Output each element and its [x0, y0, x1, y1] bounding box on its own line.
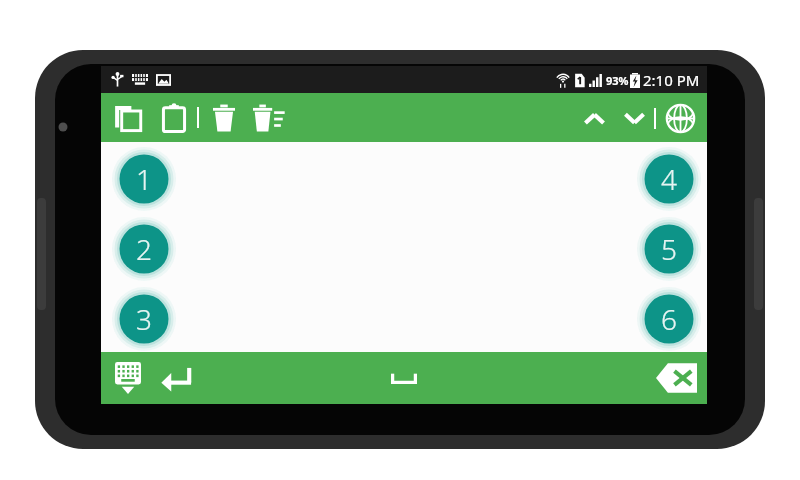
staticText: 2:10 PM [643, 70, 700, 90]
button[interactable]: Previous [576, 100, 612, 136]
button[interactable]: 6 [637, 287, 701, 351]
staticText: 4 [661, 160, 677, 198]
button[interactable]: Hide keyboard [108, 358, 148, 398]
button[interactable]: Backspace [653, 360, 699, 396]
staticText: 93% [606, 73, 629, 88]
button[interactable]: 1 [112, 147, 176, 211]
staticText: 6 [661, 300, 677, 338]
button[interactable]: Language [660, 98, 700, 138]
button[interactable]: 2 [112, 217, 176, 281]
button[interactable]: 3 [112, 287, 176, 351]
button[interactable]: Paste [155, 99, 193, 137]
button[interactable]: Enter [154, 356, 198, 400]
staticText: 5 [661, 230, 677, 268]
button[interactable]: Copy [109, 99, 147, 137]
button[interactable]: 5 [637, 217, 701, 281]
staticText: 3 [136, 300, 152, 338]
button[interactable]: Space [339, 358, 469, 398]
button[interactable]: Delete all [248, 97, 289, 138]
button[interactable]: 4 [637, 147, 701, 211]
button[interactable]: Delete [205, 99, 243, 137]
staticText: 1 [136, 160, 152, 198]
staticText: 2 [136, 230, 152, 268]
button[interactable]: Next [616, 100, 652, 136]
